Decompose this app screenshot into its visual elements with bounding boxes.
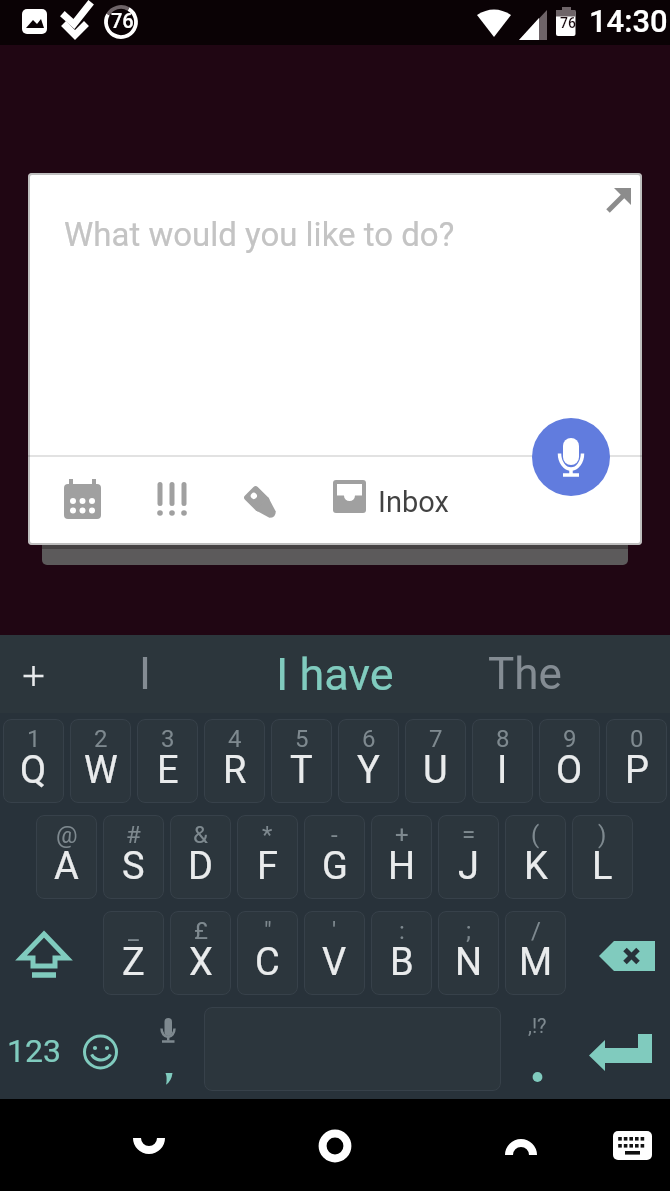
button[interactable]: ' [304,911,365,995]
button[interactable]: 2 [70,719,131,803]
button[interactable] [570,911,670,995]
staticText: : [399,917,405,945]
button[interactable]: £ [170,911,231,995]
staticText: 9 [563,725,577,753]
staticText: O [556,748,583,793]
button[interactable]: _ [103,911,164,995]
staticText: 14:30 [589,3,668,39]
button[interactable]: & [170,815,231,899]
staticText: £ [194,917,208,945]
staticText: U [423,748,448,793]
button[interactable]: * [237,815,298,899]
staticText: Q [20,748,47,793]
button[interactable] [295,1104,375,1184]
button[interactable]: 3 [137,719,198,803]
button[interactable]: 7 [405,719,466,803]
staticText: 2 [94,725,108,753]
staticText: 6 [362,725,376,753]
staticText: - [331,821,338,849]
staticText: D [188,844,213,889]
button[interactable] [595,1111,661,1177]
staticText: 7 [429,725,443,753]
button[interactable] [574,1007,670,1091]
staticText: F [257,844,279,889]
staticText: 123 [7,1032,61,1070]
staticText: A [54,844,79,889]
staticText: B [390,940,414,985]
button[interactable] [0,911,100,995]
staticText: C [255,940,280,985]
button[interactable] [8,635,60,713]
staticText: 8 [496,725,510,753]
staticText: G [322,844,348,889]
staticText: / [531,917,541,945]
staticText: X [189,940,213,985]
staticText: 1 [27,725,41,753]
staticText: 5 [295,725,309,753]
button[interactable]: ,!? [507,1007,568,1091]
button[interactable]: 8 [472,719,533,803]
staticText: L [592,844,613,889]
button[interactable]: 0 [606,719,667,803]
button[interactable]: - [304,815,365,899]
button[interactable]: + [371,815,432,899]
staticText: W [84,748,118,793]
button[interactable]: 5 [271,719,332,803]
staticText: @ [56,821,78,849]
button[interactable]: 4 [204,719,265,803]
button[interactable]: 9 [539,719,600,803]
staticText: Z [122,940,145,985]
button[interactable]: / [505,911,566,995]
button[interactable] [108,1104,188,1184]
button[interactable] [532,418,610,496]
staticText: + [395,821,409,849]
staticText: K [524,844,548,889]
button[interactable] [137,1007,198,1091]
staticText: S [122,844,145,889]
button[interactable]: # [103,815,164,899]
staticText: I [497,748,508,793]
staticText: Y [357,748,380,793]
staticText: ; [466,917,472,945]
staticText: T [290,748,313,793]
button[interactable]: I [90,635,200,713]
staticText: 0 [630,725,644,753]
button[interactable] [70,1007,131,1091]
staticText: 3 [161,725,175,753]
button[interactable] [56,470,108,522]
staticText: J [458,844,479,889]
button[interactable]: : [371,911,432,995]
staticText: V [322,940,347,985]
button[interactable]: Inbox [324,470,449,522]
button[interactable]: 123 [3,1007,64,1091]
staticText: R [223,748,247,793]
button[interactable] [235,470,287,522]
button[interactable]: 6 [338,719,399,803]
staticText: I [139,648,151,700]
button[interactable]: " [237,911,298,995]
button[interactable]: I have [230,635,440,713]
staticText: # [126,821,141,849]
staticText: What would you like to do? [64,215,455,254]
button[interactable] [600,179,642,227]
staticText: * [262,821,273,849]
staticText: ' [332,917,337,945]
staticText: & [193,821,208,849]
button[interactable]: = [438,815,499,899]
button[interactable]: ) [572,815,633,899]
button[interactable]: 1 [3,719,64,803]
staticText: ) [598,821,607,849]
button[interactable]: The [460,635,590,713]
staticText: M [519,940,553,985]
button[interactable] [480,1104,560,1184]
staticText: I have [276,648,394,701]
button[interactable]: ; [438,911,499,995]
button[interactable]: @ [36,815,97,899]
staticText: ,!? [528,1014,547,1037]
staticText: 76 [111,9,134,32]
staticText: 76 [560,15,576,31]
button[interactable]: ( [505,815,566,899]
button[interactable] [146,470,198,522]
staticText: Inbox [378,485,449,519]
